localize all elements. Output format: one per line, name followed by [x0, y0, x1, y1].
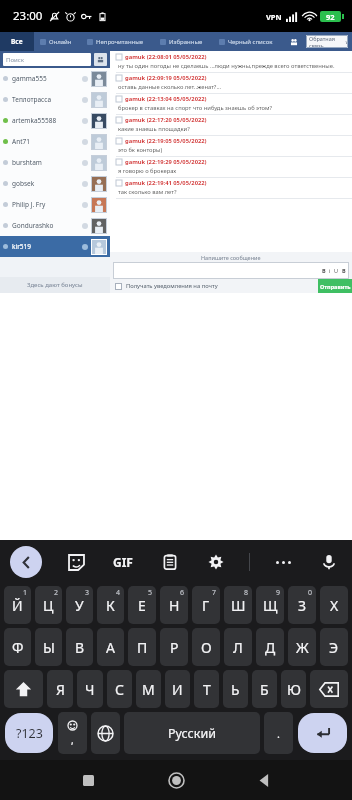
- button[interactable]: К: [97, 586, 124, 624]
- button[interactable]: И: [165, 670, 190, 708]
- button[interactable]: Онлайн: [34, 32, 78, 51]
- staticText: С: [115, 680, 124, 699]
- button[interactable]: [115, 283, 122, 290]
- staticText: К: [106, 596, 115, 615]
- button[interactable]: Здесь дают бонусы: [0, 277, 110, 293]
- staticText: gamuk (22:19:05 05/05/2022): [125, 137, 207, 145]
- button[interactable]: Назад: [10, 546, 42, 578]
- staticText: GIF: [113, 554, 133, 570]
- button[interactable]: Черный список: [210, 32, 282, 51]
- button[interactable]: Обратная связь: [306, 35, 348, 48]
- staticText: gamma555: [12, 74, 47, 83]
- button[interactable]: Ш: [224, 586, 252, 624]
- button[interactable]: Г: [192, 586, 220, 624]
- button[interactable]: Ь: [223, 670, 248, 708]
- button[interactable]: Р: [160, 628, 188, 666]
- staticText: Ж: [296, 638, 309, 657]
- staticText: Все: [11, 37, 23, 46]
- button[interactable]: GIF: [110, 549, 136, 575]
- staticText: Отправить: [320, 283, 351, 290]
- button[interactable]: Точка: [264, 712, 293, 754]
- button[interactable]: Буфер обмена: [157, 549, 183, 575]
- button[interactable]: Х: [320, 586, 348, 624]
- button[interactable]: Сменить язык: [91, 712, 120, 754]
- staticText: kir519: [12, 242, 31, 251]
- button[interactable]: О: [192, 628, 220, 666]
- button[interactable]: Ю: [281, 670, 306, 708]
- button[interactable]: B: [113, 262, 349, 279]
- button[interactable]: gobsek: [3, 173, 107, 194]
- staticText: 9: [276, 588, 281, 598]
- button[interactable]: Й: [4, 586, 31, 624]
- button[interactable]: Стикеры: [63, 549, 89, 575]
- button[interactable]: Ant71: [3, 131, 107, 152]
- button[interactable]: Недавние: [68, 760, 108, 800]
- staticText: artemka55588: [12, 116, 57, 125]
- button[interactable]: С: [107, 670, 132, 708]
- button[interactable]: Ввод: [298, 713, 347, 753]
- button[interactable]: Щ: [256, 586, 284, 624]
- button[interactable]: З: [288, 586, 316, 624]
- staticText: Р: [170, 638, 179, 657]
- button[interactable]: Philip J. Fry: [3, 194, 107, 215]
- button[interactable]: Голосовой ввод: [316, 549, 342, 575]
- button[interactable]: М: [136, 670, 161, 708]
- button[interactable]: Я: [47, 670, 73, 708]
- button[interactable]: А: [97, 628, 124, 666]
- button[interactable]: Контакты: [94, 53, 107, 66]
- staticText: 2: [54, 588, 59, 598]
- button[interactable]: Ы: [35, 628, 62, 666]
- staticText: М: [142, 680, 155, 699]
- staticText: U: [334, 267, 339, 274]
- button[interactable]: Настройки: [203, 549, 229, 575]
- staticText: Л: [233, 638, 243, 657]
- button[interactable]: Gondurashko: [3, 215, 107, 236]
- staticText: B: [342, 267, 346, 274]
- button[interactable]: Теплотрасса: [3, 89, 107, 110]
- button[interactable]: Ч: [77, 670, 103, 708]
- button[interactable]: Ж: [288, 628, 316, 666]
- button[interactable]: Э: [320, 628, 348, 666]
- button[interactable]: Русский: [124, 712, 260, 754]
- staticText: Й: [12, 596, 23, 615]
- staticText: 0: [308, 588, 313, 598]
- button[interactable]: Отправить: [318, 279, 352, 293]
- button[interactable]: Удалить: [310, 670, 348, 708]
- button[interactable]: Назад: [244, 760, 284, 800]
- button[interactable]: У: [66, 586, 93, 624]
- button[interactable]: П: [128, 628, 156, 666]
- button[interactable]: Б: [252, 670, 277, 708]
- button[interactable]: Н: [160, 586, 188, 624]
- button[interactable]: kir519: [3, 236, 107, 257]
- button[interactable]: Главный экран: [156, 760, 196, 800]
- button[interactable]: burshtam: [3, 152, 107, 173]
- button[interactable]: В: [66, 628, 93, 666]
- button[interactable]: artemka55588: [3, 110, 107, 131]
- button[interactable]: Л: [224, 628, 252, 666]
- button[interactable]: Эмодзи и запятая: [58, 712, 87, 754]
- staticText: Поиск: [3, 56, 24, 64]
- button[interactable]: Т: [194, 670, 219, 708]
- button[interactable]: Ц: [35, 586, 62, 624]
- staticText: Теплотрасса: [12, 95, 52, 104]
- staticText: Д: [265, 638, 276, 657]
- staticText: Я: [56, 680, 65, 699]
- staticText: gobsek: [12, 179, 35, 188]
- button[interactable]: Ф: [4, 628, 31, 666]
- button[interactable]: Д: [256, 628, 284, 666]
- button[interactable]: Непрочитанные: [78, 32, 152, 51]
- button[interactable]: gamma555: [3, 68, 107, 89]
- button[interactable]: Все: [0, 32, 34, 51]
- button[interactable]: Поиск: [3, 53, 91, 66]
- staticText: У: [75, 596, 84, 615]
- button[interactable]: ?123: [5, 713, 53, 753]
- button[interactable]: Избранные: [152, 32, 210, 51]
- button[interactable]: Shift: [4, 670, 43, 708]
- staticText: А: [106, 638, 115, 657]
- button[interactable]: Пользователи: [282, 32, 306, 51]
- staticText: Gondurashko: [12, 221, 54, 230]
- staticText: Онлайн: [49, 38, 72, 46]
- button[interactable]: Е: [128, 586, 156, 624]
- staticText: 92: [326, 12, 335, 22]
- button[interactable]: Ещё: [270, 549, 296, 575]
